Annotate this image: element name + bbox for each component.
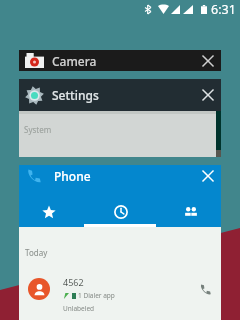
staticText: 6:31	[211, 1, 236, 18]
button[interactable]: Call	[189, 272, 221, 306]
button[interactable]: 4562	[19, 272, 221, 318]
button[interactable]: Contacts	[169, 193, 213, 231]
staticText: System	[24, 124, 52, 135]
staticText: Today	[25, 247, 48, 258]
button[interactable]: Phone	[19, 165, 221, 187]
button[interactable]: Close Phone	[195, 165, 221, 187]
button[interactable]: Settings	[19, 79, 221, 111]
staticText: Settings	[52, 87, 99, 103]
staticText: 1 Dialer app	[78, 291, 115, 300]
staticText: Phone	[54, 168, 91, 184]
staticText: 4562	[63, 276, 84, 288]
button[interactable]: Recents	[99, 193, 143, 231]
button[interactable]: Close Settings	[195, 79, 221, 111]
button[interactable]: Favorites	[27, 193, 71, 231]
button[interactable]: Camera	[19, 50, 221, 71]
button[interactable]: Close Camera	[195, 50, 221, 71]
staticText: Camera	[52, 53, 97, 69]
staticText: Unlabeled	[63, 304, 95, 313]
